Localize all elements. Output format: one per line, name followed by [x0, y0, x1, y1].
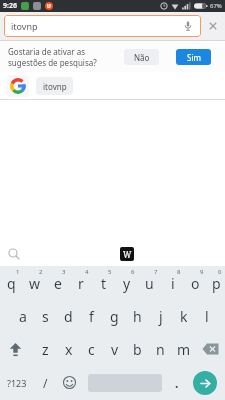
button[interactable]: ?123: [0, 365, 33, 400]
button[interactable]: h: [126, 300, 149, 333]
staticText: t: [101, 274, 107, 293]
button[interactable]: itovnp: [0, 72, 225, 99]
staticText: 9:26: [3, 1, 17, 11]
staticText: h: [133, 307, 142, 326]
button[interactable]: [57, 365, 81, 400]
staticText: z: [42, 340, 49, 359]
button[interactable]: v: [103, 333, 126, 365]
button[interactable]: q: [0, 266, 23, 300]
staticText: 0: [218, 268, 222, 276]
staticText: g: [110, 307, 119, 326]
button[interactable]: /: [33, 365, 57, 400]
button[interactable]: w: [23, 266, 46, 300]
staticText: 1: [16, 268, 20, 276]
button[interactable]: y: [115, 266, 138, 300]
button[interactable]: f: [80, 300, 103, 333]
button[interactable]: [195, 333, 225, 365]
staticText: o: [191, 274, 200, 293]
staticText: v: [111, 340, 119, 359]
staticText: m: [177, 340, 191, 359]
staticText: b: [133, 340, 142, 359]
staticText: Não: [134, 52, 150, 63]
button[interactable]: l: [195, 300, 218, 333]
staticText: a: [19, 307, 27, 326]
button[interactable]: .: [162, 365, 192, 400]
button[interactable]: g: [103, 300, 126, 333]
staticText: x: [65, 340, 73, 359]
staticText: w: [29, 274, 41, 293]
staticText: 67%: [210, 2, 222, 10]
button[interactable]: d: [57, 300, 80, 333]
staticText: j: [159, 307, 163, 326]
button[interactable]: [201, 12, 225, 40]
button[interactable]: W: [120, 247, 134, 261]
staticText: k: [180, 307, 188, 326]
button[interactable]: [88, 365, 162, 400]
button[interactable]: n: [149, 333, 172, 365]
button[interactable]: itovnp: [4, 15, 201, 37]
staticText: r: [78, 274, 84, 293]
button[interactable]: [0, 333, 34, 365]
staticText: W: [123, 249, 132, 260]
button[interactable]: s: [34, 300, 57, 333]
button[interactable]: k: [172, 300, 195, 333]
staticText: U: [47, 3, 51, 10]
button[interactable]: m: [172, 333, 195, 365]
button[interactable]: a: [11, 300, 34, 333]
button[interactable]: z: [34, 333, 57, 365]
staticText: ?123: [7, 377, 27, 389]
staticText: i: [171, 274, 175, 293]
staticText: 4: [85, 268, 89, 276]
button[interactable]: b: [126, 333, 149, 365]
staticText: f: [89, 307, 94, 326]
staticText: 7: [154, 268, 158, 276]
button[interactable]: j: [149, 300, 172, 333]
staticText: Gostaria de ativar as: [8, 46, 86, 57]
staticText: 5: [108, 268, 112, 276]
staticText: n: [156, 340, 165, 359]
staticText: y: [123, 274, 131, 293]
button[interactable]: c: [80, 333, 103, 365]
button[interactable]: r: [69, 266, 92, 300]
staticText: p: [212, 274, 221, 293]
staticText: u: [145, 274, 154, 293]
staticText: s: [42, 307, 49, 326]
button[interactable]: u: [138, 266, 161, 300]
button[interactable]: Não: [124, 49, 159, 65]
staticText: 2: [39, 268, 43, 276]
staticText: itovnp: [11, 20, 38, 32]
staticText: c: [88, 340, 95, 359]
button[interactable]: o: [184, 266, 207, 300]
staticText: q: [7, 274, 16, 293]
button[interactable]: t: [92, 266, 115, 300]
staticText: Sim: [187, 52, 201, 63]
staticText: .: [175, 375, 179, 391]
staticText: 6: [131, 268, 135, 276]
staticText: itovnp: [43, 81, 67, 92]
button[interactable]: i: [161, 266, 184, 300]
button[interactable]: Sim: [176, 49, 211, 65]
staticText: sugestões de pesquisa?: [8, 57, 97, 68]
staticText: 9: [200, 268, 204, 276]
button[interactable]: e: [46, 266, 69, 300]
staticText: /: [43, 375, 48, 391]
staticText: e: [54, 274, 62, 293]
button[interactable]: p: [207, 266, 225, 300]
staticText: 8: [177, 268, 181, 276]
button[interactable]: x: [57, 333, 80, 365]
staticText: d: [64, 307, 73, 326]
staticText: 3: [62, 268, 66, 276]
button[interactable]: [192, 365, 225, 400]
staticText: l: [205, 307, 209, 326]
